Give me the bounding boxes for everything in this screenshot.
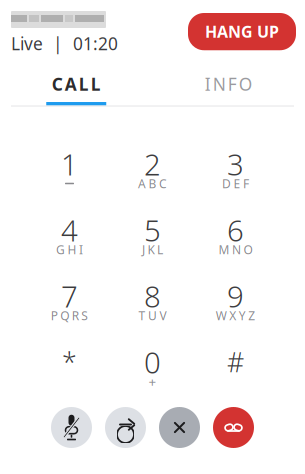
staticText: 5 xyxy=(144,210,161,249)
staticText: + xyxy=(148,373,156,390)
button[interactable]: # xyxy=(196,340,274,396)
staticText: P xyxy=(51,307,58,323)
button[interactable]: HANG UP xyxy=(188,13,296,50)
staticText: D xyxy=(222,175,231,191)
button[interactable]: 9 xyxy=(196,274,274,330)
staticText: U xyxy=(148,307,157,323)
button[interactable]: End call xyxy=(213,407,254,448)
staticText: A xyxy=(138,175,146,191)
staticText: 6 xyxy=(227,210,244,249)
staticText: M xyxy=(218,241,229,257)
staticText: Z xyxy=(248,307,255,323)
button[interactable]: * xyxy=(30,340,108,396)
button[interactable]: 5 xyxy=(113,208,191,264)
staticText: 9 xyxy=(227,276,244,315)
staticText: N xyxy=(213,72,226,95)
staticText: C xyxy=(159,175,167,191)
staticText: S xyxy=(81,307,88,323)
staticText: I xyxy=(79,241,83,257)
button[interactable]: 3 xyxy=(196,142,274,198)
staticText: 0 xyxy=(144,342,161,381)
staticText: # xyxy=(227,344,244,380)
staticText: F xyxy=(243,175,249,191)
staticText: * xyxy=(62,344,77,380)
staticText: T xyxy=(138,307,145,323)
button[interactable]: C xyxy=(0,69,152,105)
staticText: G xyxy=(56,241,65,257)
staticText: L xyxy=(91,72,101,95)
staticText: K xyxy=(147,241,154,257)
staticText: 3 xyxy=(227,144,244,183)
staticText: Y xyxy=(239,307,246,323)
staticText: L xyxy=(157,241,163,257)
staticText: R xyxy=(72,307,79,323)
button[interactable]: 6 xyxy=(196,208,274,264)
staticText: N xyxy=(232,241,241,257)
button[interactable]: 1 xyxy=(30,142,108,198)
staticText: J xyxy=(142,241,145,257)
button[interactable]: I xyxy=(152,69,305,105)
staticText: W xyxy=(216,307,227,323)
staticText: 8 xyxy=(144,276,161,315)
staticText: O xyxy=(243,241,252,257)
button[interactable]: Mute xyxy=(51,407,92,448)
staticText: 4 xyxy=(61,210,78,249)
button[interactable]: 7 xyxy=(30,274,108,330)
button[interactable]: 0 xyxy=(113,340,191,396)
staticText: V xyxy=(159,307,166,323)
button[interactable]: 4 xyxy=(30,208,108,264)
button[interactable]: 2 xyxy=(113,142,191,198)
staticText: O xyxy=(239,72,253,95)
button[interactable]: Transfer call xyxy=(105,407,146,448)
staticText: 2 xyxy=(144,144,161,183)
staticText: 1 xyxy=(61,144,78,183)
staticText: B xyxy=(148,175,156,191)
button[interactable]: 8 xyxy=(113,274,191,330)
staticText: H xyxy=(67,241,76,257)
staticText: X xyxy=(229,307,236,323)
staticText: Live | 01:20 xyxy=(11,32,118,55)
staticText: C xyxy=(52,72,63,95)
staticText: Q xyxy=(60,307,69,323)
staticText: I xyxy=(205,72,211,95)
staticText: A xyxy=(65,72,77,95)
staticText: 7 xyxy=(61,276,78,315)
staticText: HANG UP xyxy=(205,21,279,42)
staticText: F xyxy=(228,72,237,95)
staticText: L xyxy=(79,72,89,95)
button[interactable]: Close keypad xyxy=(159,407,200,448)
staticText: E xyxy=(233,175,240,191)
